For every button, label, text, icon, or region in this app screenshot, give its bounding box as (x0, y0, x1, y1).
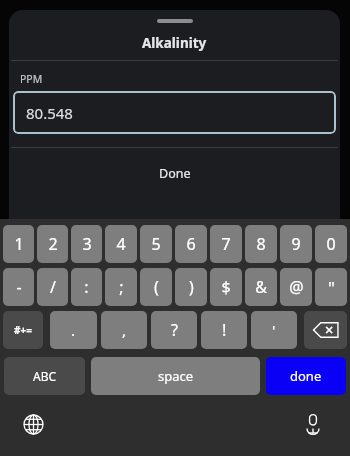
staticText: - (16, 276, 22, 298)
button[interactable]: Backspace (304, 311, 347, 349)
button[interactable]: 1 (3, 225, 34, 263)
staticText: : (84, 276, 89, 298)
button[interactable]: ABC (4, 357, 85, 395)
staticText: PPM (20, 72, 43, 86)
staticText: 8 (256, 233, 266, 255)
staticText: ; (119, 276, 124, 298)
staticText: / (50, 276, 56, 298)
button[interactable]: #+= (3, 311, 43, 349)
button[interactable]: 7 (210, 225, 242, 263)
staticText: & (255, 276, 267, 298)
staticText: 80.548 (26, 103, 73, 123)
button[interactable]: Change keyboard language (14, 405, 52, 443)
staticText: 4 (116, 233, 126, 255)
staticText: Done (159, 165, 191, 182)
staticText: 6 (186, 233, 196, 255)
button[interactable]: 2 (37, 225, 68, 263)
staticText: 9 (291, 233, 301, 255)
staticText: ABC (33, 368, 57, 384)
staticText: ! (222, 319, 227, 341)
staticText: 7 (221, 233, 231, 255)
staticText: . (71, 320, 76, 340)
button[interactable]: 3 (71, 225, 102, 263)
button[interactable]: 0 (315, 225, 347, 263)
staticText: Alkalinity (142, 34, 207, 52)
button[interactable]: done (266, 357, 346, 395)
button[interactable]: . (50, 311, 97, 349)
button[interactable]: 8 (245, 225, 277, 263)
button[interactable]: 4 (105, 225, 137, 263)
button[interactable]: ' (251, 311, 297, 349)
button[interactable]: 5 (140, 225, 172, 263)
button[interactable]: Done (9, 148, 340, 198)
staticText: 0 (326, 233, 336, 255)
staticText: ) (189, 276, 194, 298)
staticText: @ (289, 276, 304, 298)
staticText: ( (154, 276, 159, 298)
staticText: 2 (48, 233, 58, 255)
staticText: " (328, 276, 335, 299)
button[interactable]: : (71, 268, 102, 306)
staticText: ? (171, 319, 178, 341)
staticText: space (158, 367, 194, 385)
staticText: #+= (14, 323, 32, 337)
button[interactable]: Voice input (294, 405, 332, 443)
staticText: ' (272, 320, 276, 340)
button[interactable]: & (245, 268, 277, 306)
button[interactable]: $ (210, 268, 242, 306)
button[interactable]: " (315, 268, 347, 306)
staticText: done (290, 367, 322, 385)
button[interactable]: ( (140, 268, 172, 306)
button[interactable]: 6 (175, 225, 207, 263)
button[interactable]: ) (175, 268, 207, 306)
staticText: 5 (151, 233, 161, 255)
button[interactable]: ? (151, 311, 197, 349)
staticText: 3 (82, 233, 92, 255)
button[interactable]: space (91, 357, 260, 395)
button[interactable]: 9 (280, 225, 312, 263)
button[interactable]: @ (280, 268, 312, 306)
button[interactable]: 80.548 (13, 91, 336, 134)
staticText: $ (221, 276, 231, 298)
staticText: , (122, 320, 127, 340)
button[interactable]: / (37, 268, 68, 306)
button[interactable]: - (3, 268, 34, 306)
button[interactable]: , (101, 311, 147, 349)
staticText: 1 (14, 233, 24, 255)
button[interactable]: ; (105, 268, 137, 306)
button[interactable]: ! (201, 311, 247, 349)
